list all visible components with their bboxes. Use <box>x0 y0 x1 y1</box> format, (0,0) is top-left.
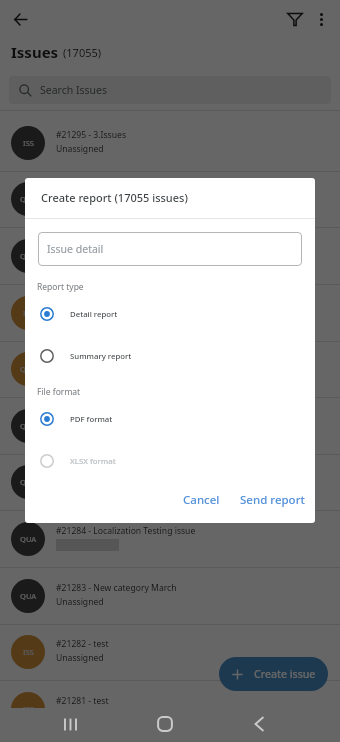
button[interactable]: ISS <box>0 115 340 171</box>
staticText: Create report (17055 issues) <box>41 190 188 205</box>
staticText: Issues <box>11 42 59 62</box>
staticText: Unassigned <box>56 256 104 268</box>
staticText: Cancel <box>183 492 220 508</box>
staticText: QUA <box>20 591 37 601</box>
staticText: Send report <box>240 492 305 508</box>
button[interactable]: QUA <box>0 341 340 397</box>
staticText: ISS <box>23 704 34 714</box>
staticText: PDF format <box>70 414 113 425</box>
button[interactable]: Filter <box>277 1 313 37</box>
staticText: Issue detail <box>47 242 104 256</box>
staticText: #21283 - New category March <box>56 582 177 594</box>
button[interactable]: QUA <box>0 568 340 624</box>
staticText: Summary report <box>70 351 132 362</box>
staticText: QUA <box>20 534 37 544</box>
button[interactable]: ISS <box>0 285 340 341</box>
staticText: Detail report <box>70 309 118 320</box>
button[interactable]: XLSX format <box>25 440 315 482</box>
staticText: ISS <box>23 647 34 657</box>
staticText: QUA <box>20 251 37 261</box>
staticText: #21281 - test <box>56 695 109 707</box>
staticText: Create issue <box>254 667 316 681</box>
staticText: #21293 - Demo issue <box>56 242 141 254</box>
staticText: Report type <box>37 281 84 293</box>
button[interactable]: QUA <box>0 228 340 284</box>
staticText: QUA <box>20 194 37 204</box>
staticText: ISS <box>23 308 34 318</box>
staticText: #21284 - Localization Testing issue <box>56 525 196 537</box>
staticText: #21295 - 3.Issues <box>56 129 127 141</box>
staticText: #21290 - Another <box>56 412 127 424</box>
staticText: QUA <box>20 364 37 374</box>
button[interactable]: More options <box>303 1 339 37</box>
button[interactable]: QUA <box>0 511 340 567</box>
button[interactable]: Search Issues <box>9 76 331 104</box>
staticText: Unassigned <box>56 199 104 211</box>
staticText: Search Issues <box>40 83 108 97</box>
button[interactable]: Recents <box>50 708 90 742</box>
staticText: QUA <box>20 477 37 487</box>
button[interactable]: Back <box>238 708 278 742</box>
staticText: (17055) <box>63 45 102 60</box>
staticText: #21294 - QA issue <box>56 185 129 197</box>
staticText: Unassigned <box>56 596 104 608</box>
staticText: QUA <box>20 421 37 431</box>
button[interactable]: Back <box>2 1 38 37</box>
button[interactable]: ISS <box>0 681 340 737</box>
button[interactable]: Issue detail <box>38 232 302 266</box>
staticText: Unassigned <box>56 313 104 325</box>
button[interactable]: Send report <box>233 488 312 512</box>
button[interactable]: QUA <box>0 454 340 510</box>
button[interactable]: QUA <box>0 398 340 454</box>
staticText: Unassigned <box>56 143 104 155</box>
staticText: #21291 - Sample <box>56 355 124 367</box>
button[interactable]: Summary report <box>25 335 315 377</box>
staticText: ISS <box>23 138 34 148</box>
staticText: Unassigned <box>56 652 104 664</box>
button[interactable]: QUA <box>0 171 340 227</box>
staticText: XLSX format <box>70 456 116 467</box>
staticText: File format <box>37 386 81 398</box>
button[interactable]: PDF format <box>25 398 315 440</box>
staticText: Unassigned <box>56 709 104 721</box>
button[interactable]: Home <box>144 708 184 742</box>
button[interactable]: Detail report <box>25 293 315 335</box>
button[interactable]: Create issue <box>219 657 328 691</box>
button[interactable]: Cancel <box>176 488 227 512</box>
staticText: #21282 - test <box>56 638 109 650</box>
button[interactable]: ISS <box>0 624 340 680</box>
